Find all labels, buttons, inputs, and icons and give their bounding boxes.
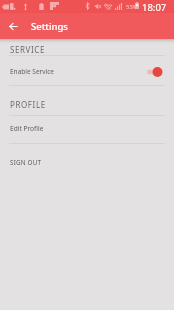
staticText: PROFILE: [10, 99, 46, 110]
staticText: 18:07: [142, 1, 167, 14]
staticText: 55%: [126, 3, 138, 11]
staticText: SERVICE: [10, 44, 46, 55]
staticText: Edit Profile: [10, 124, 44, 133]
staticText: Settings: [31, 20, 68, 33]
staticText: Enable Service: [10, 67, 54, 76]
button[interactable]: Enable Service: [0, 56, 174, 85]
button[interactable]: Edit Profile: [0, 116, 174, 143]
button[interactable]: Navigate up: [0, 13, 27, 39]
button[interactable]: SIGN OUT: [0, 144, 174, 178]
staticText: SIGN OUT: [10, 158, 42, 167]
